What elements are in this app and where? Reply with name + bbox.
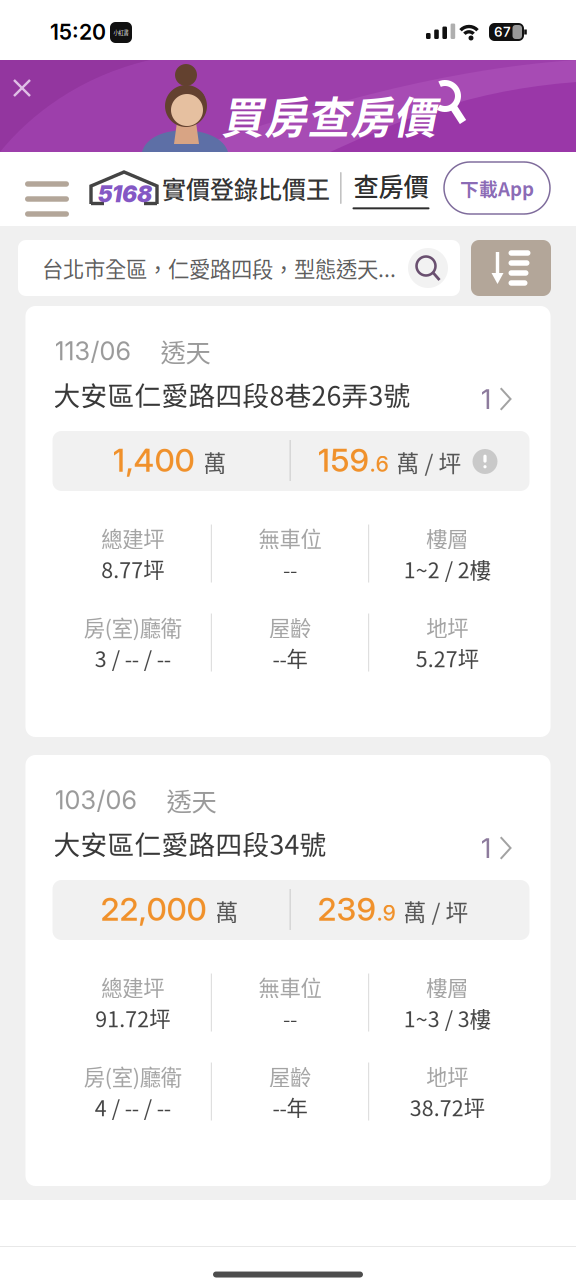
staticText: 樓層 xyxy=(426,972,468,1002)
staticText: 查房價 xyxy=(353,167,428,203)
staticText: --年 xyxy=(272,1092,307,1122)
staticText: 實價登錄比價王 xyxy=(162,171,330,205)
staticText: 15:20 xyxy=(50,19,106,45)
staticText: 地坪 xyxy=(426,612,468,642)
button[interactable]: Sort xyxy=(471,240,551,296)
staticText: 透天 xyxy=(160,333,210,369)
staticText: --年 xyxy=(272,643,307,673)
button[interactable]: Menu xyxy=(12,167,82,231)
staticText: 1,400 xyxy=(112,441,194,479)
button[interactable]: 查房價 xyxy=(351,166,431,210)
button[interactable]: Close ad xyxy=(0,66,44,110)
button[interactable]: 台北市全區，仁愛路四段，型態透天... xyxy=(18,240,460,296)
staticText: 萬 xyxy=(215,894,238,927)
staticText: 239 xyxy=(317,890,376,928)
staticText: 下載App xyxy=(460,174,534,201)
staticText: 8.77坪 xyxy=(101,554,164,584)
staticText: 3 / -- / -- xyxy=(95,643,171,673)
staticText: 萬 / 坪 xyxy=(396,445,461,478)
staticText: 1 xyxy=(480,831,491,865)
staticText: 透天 xyxy=(166,782,216,818)
staticText: 屋齡 xyxy=(269,1061,311,1091)
staticText: 地坪 xyxy=(426,1061,468,1091)
staticText: 無車位 xyxy=(258,523,321,553)
button[interactable]: 下載App xyxy=(444,162,550,214)
staticText: 無車位 xyxy=(258,972,321,1002)
staticText: 大安區仁愛路四段8巷26弄3號 xyxy=(53,375,410,413)
staticText: 5168 xyxy=(98,180,152,208)
staticText: 1 xyxy=(480,382,491,416)
button[interactable]: 113/06 xyxy=(25,306,550,737)
staticText: 5.27坪 xyxy=(416,643,479,673)
staticText: 67 xyxy=(494,24,511,40)
staticText: 買房查房價 xyxy=(221,84,436,146)
staticText: 房(室)廳衛 xyxy=(84,1061,182,1091)
staticText: 總建坪 xyxy=(101,972,164,1002)
staticText: 38.72坪 xyxy=(410,1092,485,1122)
staticText: 103/06 xyxy=(54,785,136,815)
staticText: 22,000 xyxy=(100,890,206,928)
staticText: -- xyxy=(283,554,297,584)
staticText: 大安區仁愛路四段34號 xyxy=(53,824,326,862)
staticText: 總建坪 xyxy=(101,523,164,553)
staticText: 113/06 xyxy=(54,336,130,366)
staticText: .9 xyxy=(376,900,395,926)
staticText: -- xyxy=(283,1003,297,1033)
staticText: 台北市全區，仁愛路四段，型態透天... xyxy=(42,253,396,283)
staticText: .6 xyxy=(369,451,388,477)
staticText: 1~2 / 2樓 xyxy=(404,554,491,584)
staticText: 1~3 / 3樓 xyxy=(404,1003,491,1033)
staticText: 159 xyxy=(317,441,369,479)
staticText: 房(室)廳衛 xyxy=(84,612,182,642)
staticText: 小紅書 xyxy=(113,29,128,36)
staticText: 屋齡 xyxy=(269,612,311,642)
staticText: 萬 / 坪 xyxy=(403,894,468,927)
staticText: 萬 xyxy=(203,445,226,478)
staticText: 91.72坪 xyxy=(95,1003,170,1033)
staticText: 樓層 xyxy=(426,523,468,553)
button[interactable]: 103/06 xyxy=(25,755,550,1186)
staticText: 4 / -- / -- xyxy=(95,1092,171,1122)
